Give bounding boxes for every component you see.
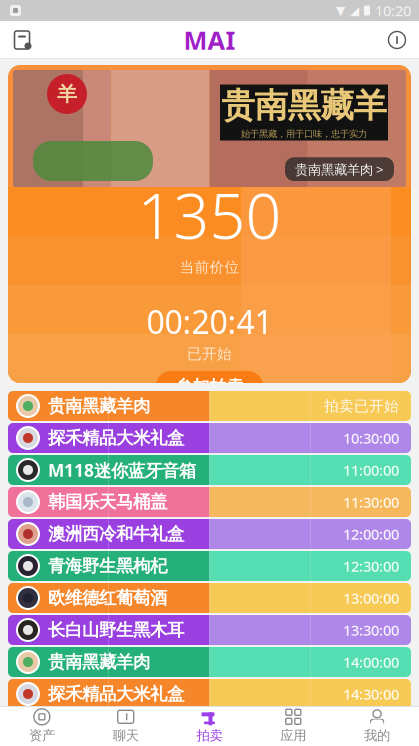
staticText: 拍卖已开始	[324, 397, 399, 415]
staticText: ◢	[350, 4, 359, 17]
button[interactable]: 应用	[251, 706, 335, 746]
staticText: 青海野生黑枸杞	[48, 715, 167, 737]
button[interactable]: 资产	[0, 706, 84, 746]
staticText: 14:00:00	[343, 652, 399, 672]
staticText: 10:30:00	[343, 428, 399, 448]
button[interactable]: Information	[375, 21, 419, 59]
staticText: 14:30:00	[343, 684, 399, 704]
staticText: 应用	[280, 727, 306, 744]
button[interactable]: 韩国乐天马桶盖	[8, 487, 411, 517]
button[interactable]: 贵南黑藏羊肉	[8, 391, 411, 421]
staticText: 贵南黑藏羊肉	[48, 395, 150, 417]
staticText: 我的	[364, 727, 390, 744]
button[interactable]: 欧维德红葡萄酒	[8, 583, 411, 613]
button[interactable]: 青海野生黑枸杞	[8, 711, 411, 741]
button[interactable]: 贵南黑藏羊肉	[8, 647, 411, 677]
staticText: 已开始	[187, 345, 232, 363]
staticText: 13:00:00	[343, 588, 399, 608]
staticText: 13:30:00	[343, 620, 399, 640]
button[interactable]: 拍卖	[168, 706, 251, 746]
staticText: 1350	[137, 173, 281, 256]
staticText: 11:30:00	[343, 492, 399, 512]
button[interactable]: Scan document	[0, 21, 44, 59]
staticText: 拍卖	[196, 727, 222, 744]
button[interactable]: 参加拍卖	[155, 371, 263, 403]
button[interactable]: 青海野生黑枸杞	[8, 551, 411, 581]
staticText: 羊	[57, 82, 77, 106]
staticText: 始于黑藏，用于口味，忠于实力	[241, 128, 367, 140]
staticText: 11:00:00	[343, 460, 399, 480]
staticText: 10:20	[375, 1, 411, 20]
staticText: 12:00:00	[343, 524, 399, 544]
staticText: 00:20:41	[146, 300, 272, 343]
staticText: 青海野生黑枸杞	[48, 555, 167, 577]
staticText: 贵南黑藏羊	[221, 85, 386, 126]
staticText: 澳洲西冷和牛礼盒	[48, 523, 184, 545]
staticText: 欧维德红葡萄酒	[48, 587, 167, 609]
button[interactable]: 澳洲西冷和牛礼盒	[8, 519, 411, 549]
staticText: 15:00:00	[343, 716, 399, 736]
staticText: 长白山野生黑木耳	[48, 619, 184, 641]
button[interactable]: M118迷你蓝牙音箱	[8, 455, 411, 485]
button[interactable]: 贵南黑藏羊肉 >	[285, 157, 394, 181]
staticText: M118迷你蓝牙音箱	[48, 458, 196, 481]
staticText: 聊天	[113, 727, 139, 744]
staticText: 当前价位	[179, 258, 239, 276]
staticText: 韩国乐天马桶盖	[48, 491, 167, 513]
staticText: MAI	[183, 23, 235, 57]
staticText: 探禾精品大米礼盒	[48, 683, 184, 705]
staticText: ▼	[336, 4, 345, 17]
staticText: 探禾精品大米礼盒	[48, 427, 184, 449]
staticText: 参加拍卖	[175, 376, 243, 397]
button[interactable]: 探禾精品大米礼盒	[8, 423, 411, 453]
button[interactable]: 聊天	[84, 706, 168, 746]
button[interactable]: 探禾精品大米礼盒	[8, 679, 411, 709]
button[interactable]: 我的	[335, 706, 419, 746]
staticText: 贵南黑藏羊肉 >	[295, 160, 384, 178]
staticText: 资产	[29, 727, 55, 744]
staticText: 12:30:00	[343, 556, 399, 576]
button[interactable]: 长白山野生黑木耳	[8, 615, 411, 645]
staticText: 贵南黑藏羊肉	[48, 651, 150, 673]
